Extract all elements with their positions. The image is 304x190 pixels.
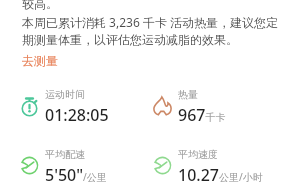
button[interactable]: Duration <box>19 88 153 122</box>
staticText: 运动时间 <box>45 88 85 101</box>
other: Average pace <box>19 155 40 176</box>
button[interactable]: Calories <box>152 88 286 122</box>
button[interactable]: Average pace <box>19 148 153 182</box>
staticText: 平均配速 <box>45 148 85 161</box>
staticText: 平均速度 <box>178 148 218 161</box>
staticText: 去测量 <box>22 53 58 68</box>
staticText: 10.27公里/小时 <box>178 164 263 182</box>
staticText: 5'50"/公里 <box>45 164 107 182</box>
staticText: 热量 <box>178 88 198 101</box>
button[interactable]: Average speed <box>152 148 286 182</box>
staticText: 967千卡 <box>178 104 226 122</box>
other: Average speed <box>152 155 173 176</box>
button[interactable]: 去测量 <box>22 53 58 68</box>
other: Duration <box>19 95 40 116</box>
staticText: 较高。 <box>22 0 58 11</box>
staticText: 本周已累计消耗 3,236 千卡 活动热量，建议您定期测量体重，以评估您运动减脂… <box>22 14 290 47</box>
staticText: 01:28:05 <box>45 104 109 122</box>
other: Calories <box>152 95 173 116</box>
